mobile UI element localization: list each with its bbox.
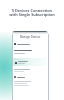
staticText: 5 Devices Connection with Single Subscri… bbox=[9, 8, 55, 17]
button[interactable] bbox=[13, 58, 47, 66]
button[interactable] bbox=[14, 75, 46, 79]
button[interactable] bbox=[14, 42, 46, 46]
button[interactable]: Manage Devices bbox=[12, 34, 48, 39]
staticText: Manage Devices bbox=[20, 35, 41, 39]
